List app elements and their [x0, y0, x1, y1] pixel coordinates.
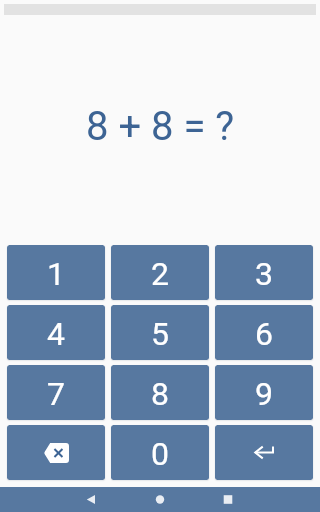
- button[interactable]: 9: [215, 365, 313, 420]
- button[interactable]: Enter: [215, 425, 313, 480]
- button[interactable]: 0: [111, 425, 209, 480]
- button[interactable]: Recent apps: [210, 487, 246, 512]
- button[interactable]: 2: [111, 245, 209, 300]
- button[interactable]: 4: [7, 305, 105, 360]
- button[interactable]: 8: [111, 365, 209, 420]
- staticText: 0: [151, 435, 169, 473]
- button[interactable]: 6: [215, 305, 313, 360]
- staticText: 8: [151, 375, 169, 413]
- staticText: 2: [151, 255, 169, 293]
- staticText: 8 + 8 = ?: [86, 103, 235, 150]
- staticText: 5: [151, 315, 169, 353]
- button[interactable]: 5: [111, 305, 209, 360]
- button[interactable]: 7: [7, 365, 105, 420]
- button[interactable]: Home: [142, 487, 178, 512]
- button[interactable]: 1: [7, 245, 105, 300]
- button[interactable]: Back: [73, 487, 109, 512]
- staticText: 7: [47, 375, 65, 413]
- staticText: 4: [47, 315, 65, 353]
- staticText: 3: [255, 255, 273, 293]
- staticText: 1: [47, 255, 65, 293]
- staticText: 6: [255, 315, 273, 353]
- button[interactable]: Backspace: [7, 425, 105, 480]
- button[interactable]: 3: [215, 245, 313, 300]
- staticText: 9: [255, 375, 273, 413]
